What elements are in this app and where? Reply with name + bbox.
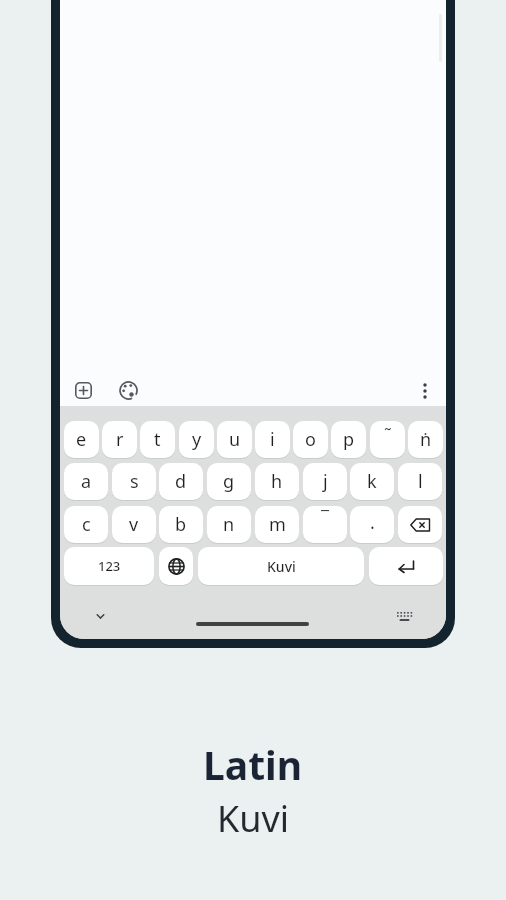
staticText: 123: [98, 557, 121, 575]
button[interactable]: c: [64, 506, 108, 543]
staticText: o: [305, 427, 316, 452]
button[interactable]: n: [207, 506, 251, 543]
staticText: v: [129, 512, 139, 537]
staticText: Kuvi: [267, 557, 296, 576]
button[interactable]: i: [255, 421, 290, 458]
button[interactable]: [398, 506, 442, 543]
button[interactable]: k: [350, 463, 394, 500]
staticText: l: [418, 469, 423, 494]
button[interactable]: a: [64, 463, 108, 500]
staticText: y: [192, 427, 202, 452]
staticText: n: [223, 512, 235, 537]
button[interactable]: .: [350, 506, 394, 543]
button[interactable]: ṅ: [408, 421, 443, 458]
button[interactable]: ¯: [303, 506, 347, 543]
button[interactable]: Kuvi: [198, 547, 364, 585]
staticText: r: [116, 427, 124, 452]
staticText: d: [175, 469, 187, 494]
staticText: s: [130, 469, 139, 494]
button[interactable]: h: [255, 463, 299, 500]
staticText: i: [270, 427, 275, 452]
staticText: t: [154, 427, 161, 452]
staticText: ˜: [384, 422, 392, 445]
staticText: Latin: [203, 738, 303, 791]
button[interactable]: y: [179, 421, 214, 458]
button[interactable]: [418, 381, 432, 401]
staticText: p: [343, 427, 355, 452]
button[interactable]: [96, 613, 105, 620]
button[interactable]: v: [112, 506, 156, 543]
staticText: ṅ: [420, 427, 432, 452]
button[interactable]: b: [159, 506, 203, 543]
button[interactable]: s: [112, 463, 156, 500]
button[interactable]: j: [303, 463, 347, 500]
button[interactable]: [159, 547, 193, 585]
button[interactable]: 123: [64, 547, 154, 585]
staticText: e: [76, 427, 87, 452]
staticText: c: [82, 512, 91, 537]
staticText: ¯: [321, 507, 330, 529]
button[interactable]: l: [398, 463, 442, 500]
button[interactable]: [369, 547, 443, 585]
staticText: k: [367, 469, 377, 494]
button[interactable]: m: [255, 506, 299, 543]
staticText: j: [323, 469, 328, 494]
staticText: m: [269, 512, 286, 537]
staticText: .: [370, 510, 375, 535]
button[interactable]: g: [207, 463, 251, 500]
button[interactable]: [395, 610, 414, 623]
button[interactable]: [119, 381, 138, 400]
button[interactable]: e: [64, 421, 99, 458]
staticText: h: [271, 469, 283, 494]
button[interactable]: ˜: [370, 421, 405, 458]
staticText: b: [175, 512, 187, 537]
button[interactable]: d: [159, 463, 203, 500]
button[interactable]: [75, 382, 92, 399]
staticText: u: [229, 427, 241, 452]
staticText: a: [81, 469, 92, 494]
staticText: Kuvi: [217, 794, 290, 843]
button[interactable]: r: [102, 421, 137, 458]
staticText: g: [223, 469, 235, 494]
button[interactable]: u: [217, 421, 252, 458]
button[interactable]: o: [293, 421, 328, 458]
button[interactable]: t: [140, 421, 175, 458]
button[interactable]: p: [331, 421, 366, 458]
